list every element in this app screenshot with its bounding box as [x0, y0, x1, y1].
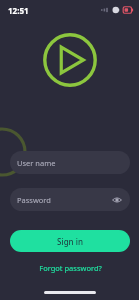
button[interactable]: Sign in	[10, 230, 130, 252]
staticText: Sign in	[57, 236, 83, 247]
button[interactable]: Password	[10, 188, 130, 211]
staticText: User name	[17, 158, 56, 168]
button[interactable]: Forgot password?	[10, 261, 130, 275]
staticText: Forgot password?	[39, 263, 102, 273]
button[interactable]: User name	[10, 151, 130, 174]
staticText: Password	[17, 195, 51, 205]
staticText: 12:51	[8, 5, 29, 16]
button[interactable]: Show password	[111, 194, 123, 206]
